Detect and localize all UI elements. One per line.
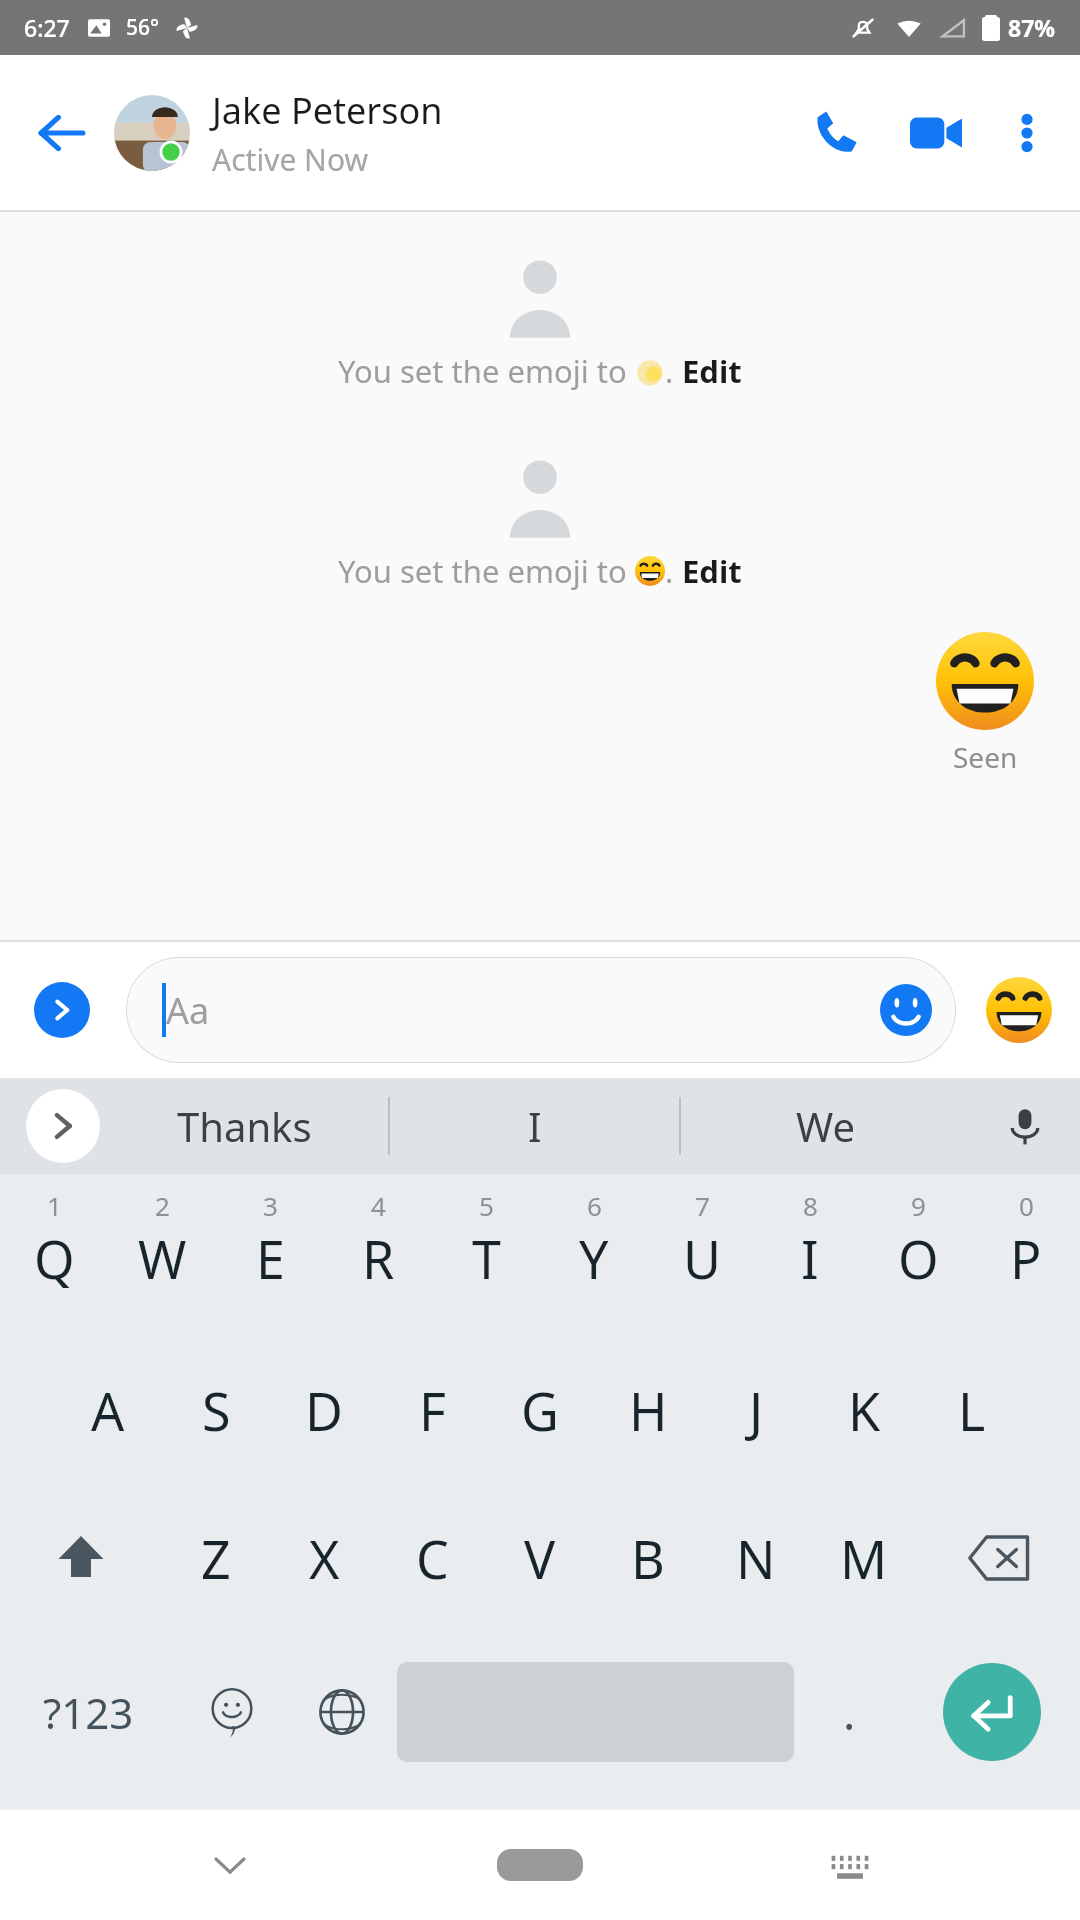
staticText: L [958,1375,986,1446]
button[interactable]: 6 [540,1188,648,1336]
staticText: O [898,1223,939,1294]
button[interactable]: Backspace [918,1484,1080,1632]
button[interactable]: 1 [0,1188,108,1336]
button[interactable]: . [794,1632,904,1792]
staticText: K [848,1375,881,1446]
staticText: I [801,1223,819,1294]
button[interactable]: Home [475,1825,605,1905]
button[interactable]: 7 [648,1188,756,1336]
button[interactable]: V [486,1484,594,1632]
button[interactable]: Video call [898,95,974,171]
button[interactable]: Voice call [798,95,874,171]
button[interactable]: Voice input [970,1078,1080,1174]
staticText: ?123 [43,1684,134,1741]
staticText: T [472,1223,501,1294]
staticText: Active Now [212,139,369,180]
staticText: Jake Peterson [212,86,443,135]
button[interactable]: A [54,1336,162,1484]
staticText: . [665,350,682,392]
staticText: H [629,1375,668,1446]
button[interactable]: Thanks [100,1078,388,1174]
staticText: 87% [1008,12,1056,43]
button[interactable]: G [486,1336,594,1484]
button[interactable]: S [162,1336,270,1484]
button[interactable]: Hide keyboard [190,1825,270,1905]
button[interactable]: Emoji picker [878,982,934,1038]
staticText: Aa [166,986,210,1035]
button[interactable]: More suggestions [26,1089,100,1163]
button[interactable]: 0 [972,1188,1080,1336]
button[interactable]: Jake Peterson [212,86,798,180]
button[interactable]: Emoji [177,1632,287,1792]
button[interactable]: J [702,1336,810,1484]
button[interactable]: 8 [756,1188,864,1336]
button[interactable]: L [918,1336,1026,1484]
staticText: . [665,550,682,592]
button[interactable]: 9 [864,1188,972,1336]
button[interactable]: B [594,1484,702,1632]
staticText: 3 [263,1188,278,1223]
staticText: X [309,1523,340,1594]
button[interactable]: Edit [682,350,742,392]
button[interactable]: Aa [126,957,956,1063]
button[interactable]: X [270,1484,378,1632]
staticText: 9 [911,1188,926,1223]
button[interactable]: Z [162,1484,270,1632]
staticText: P [1010,1223,1042,1294]
staticText: N [736,1523,776,1594]
button[interactable]: Enter [943,1663,1041,1761]
staticText: G [521,1375,559,1446]
staticText: R [362,1223,395,1294]
button[interactable]: C [378,1484,486,1632]
staticText: U [683,1223,722,1294]
button[interactable]: Switch keyboard [810,1825,890,1905]
button[interactable]: 3 [216,1188,324,1336]
staticText: S [202,1375,231,1446]
button[interactable]: Edit [682,550,742,592]
button[interactable]: D [270,1336,378,1484]
button[interactable]: M [810,1484,918,1632]
staticText: Edit [682,350,742,392]
button[interactable]: N [702,1484,810,1632]
staticText: 4 [371,1188,386,1223]
staticText: 6:27 [24,12,70,43]
staticText: 5 [479,1188,494,1223]
staticText: M [840,1523,888,1594]
staticText: V [524,1523,556,1594]
staticText: C [416,1523,449,1594]
staticText: F [419,1375,446,1446]
staticText: I [528,1099,542,1153]
staticText: Q [34,1223,75,1294]
staticText: 1 [47,1188,62,1223]
staticText: W [138,1223,187,1294]
button[interactable]: I [390,1078,679,1174]
button[interactable]: 2 [108,1188,216,1336]
staticText: J [749,1375,764,1446]
button[interactable]: H [594,1336,702,1484]
staticText: 6 [587,1188,602,1223]
button[interactable]: More options [992,98,1062,168]
button[interactable]: Shift [0,1484,162,1632]
staticText: 8 [803,1188,818,1223]
staticText: Thanks [177,1099,312,1153]
button[interactable]: K [810,1336,918,1484]
button[interactable]: Expand actions [34,982,90,1038]
button[interactable]: 4 [324,1188,432,1336]
staticText: D [305,1375,343,1446]
staticText: A [91,1375,125,1446]
button[interactable]: ?123 [0,1632,177,1792]
staticText: Z [201,1523,231,1594]
staticText: B [631,1523,665,1594]
staticText: You set the emoji to [338,350,635,392]
staticText: E [256,1223,285,1294]
button[interactable] [114,95,190,171]
button[interactable]: 5 [432,1188,540,1336]
button[interactable]: Change language [287,1632,397,1792]
button[interactable]: Send emoji [982,973,1056,1047]
staticText: 7 [695,1188,710,1223]
button[interactable]: Back [30,102,92,164]
button[interactable]: F [378,1336,486,1484]
staticText: 0 [1019,1188,1034,1223]
button[interactable]: We [681,1078,970,1174]
